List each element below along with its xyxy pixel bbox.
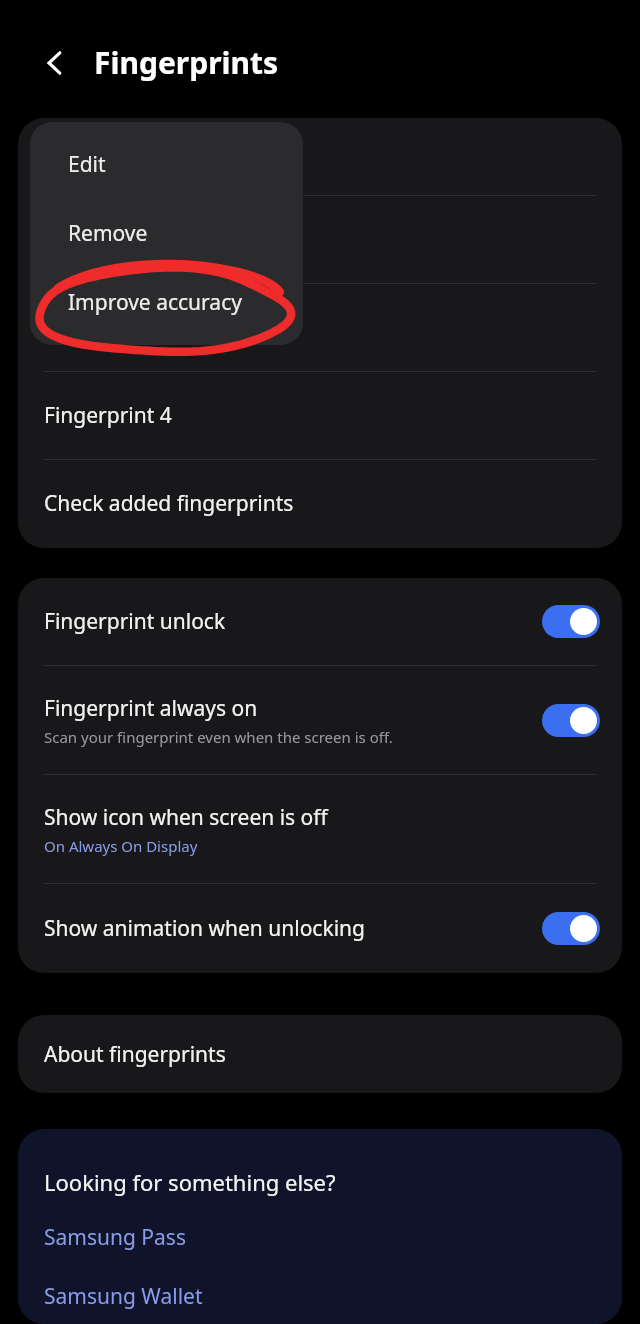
- button[interactable]: Samsung Pass: [18, 1219, 622, 1256]
- staticText: Show icon when screen is off: [44, 803, 328, 832]
- button[interactable]: Fingerprint 4: [18, 372, 622, 459]
- staticText: Improve accuracy: [68, 288, 242, 317]
- staticText: About fingerprints: [44, 1040, 226, 1069]
- button[interactable]: Toggle: [542, 912, 600, 945]
- button[interactable]: Samsung Wallet: [18, 1278, 622, 1315]
- button[interactable]: Toggle: [542, 605, 600, 638]
- staticText: Fingerprint 4: [44, 401, 172, 430]
- staticText: Fingerprint unlock: [44, 607, 226, 636]
- staticText: Samsung Wallet: [44, 1282, 203, 1311]
- staticText: Remove: [68, 219, 148, 248]
- button[interactable]: Show icon when screen is off: [18, 775, 622, 883]
- button[interactable]: [18, 196, 622, 283]
- staticText: Edit: [68, 150, 106, 179]
- staticText: Fingerprint always on: [44, 694, 258, 723]
- staticText: On Always On Display: [44, 836, 198, 856]
- staticText: Fingerprints: [94, 42, 279, 83]
- staticText: Samsung Pass: [44, 1223, 186, 1252]
- staticText: Scan your fingerprint even when the scre…: [44, 727, 393, 747]
- button[interactable]: Toggle: [542, 704, 600, 737]
- button[interactable]: Back: [28, 36, 82, 90]
- button[interactable]: Fingerprint unlock: [18, 578, 622, 665]
- staticText: Show animation when unlocking: [44, 914, 365, 943]
- button[interactable]: Remove: [30, 199, 303, 268]
- button[interactable]: Edit: [30, 130, 303, 199]
- button[interactable]: Improve accuracy: [30, 268, 303, 337]
- button[interactable]: About fingerprints: [18, 1015, 622, 1093]
- staticText: Check added fingerprints: [44, 489, 294, 518]
- button[interactable]: Fingerprint always on: [18, 666, 622, 774]
- staticText: Looking for something else?: [44, 1167, 336, 1197]
- button[interactable]: [18, 118, 622, 195]
- button[interactable]: [18, 284, 622, 371]
- button[interactable]: Check added fingerprints: [18, 460, 622, 547]
- button[interactable]: Show animation when unlocking: [18, 884, 622, 973]
